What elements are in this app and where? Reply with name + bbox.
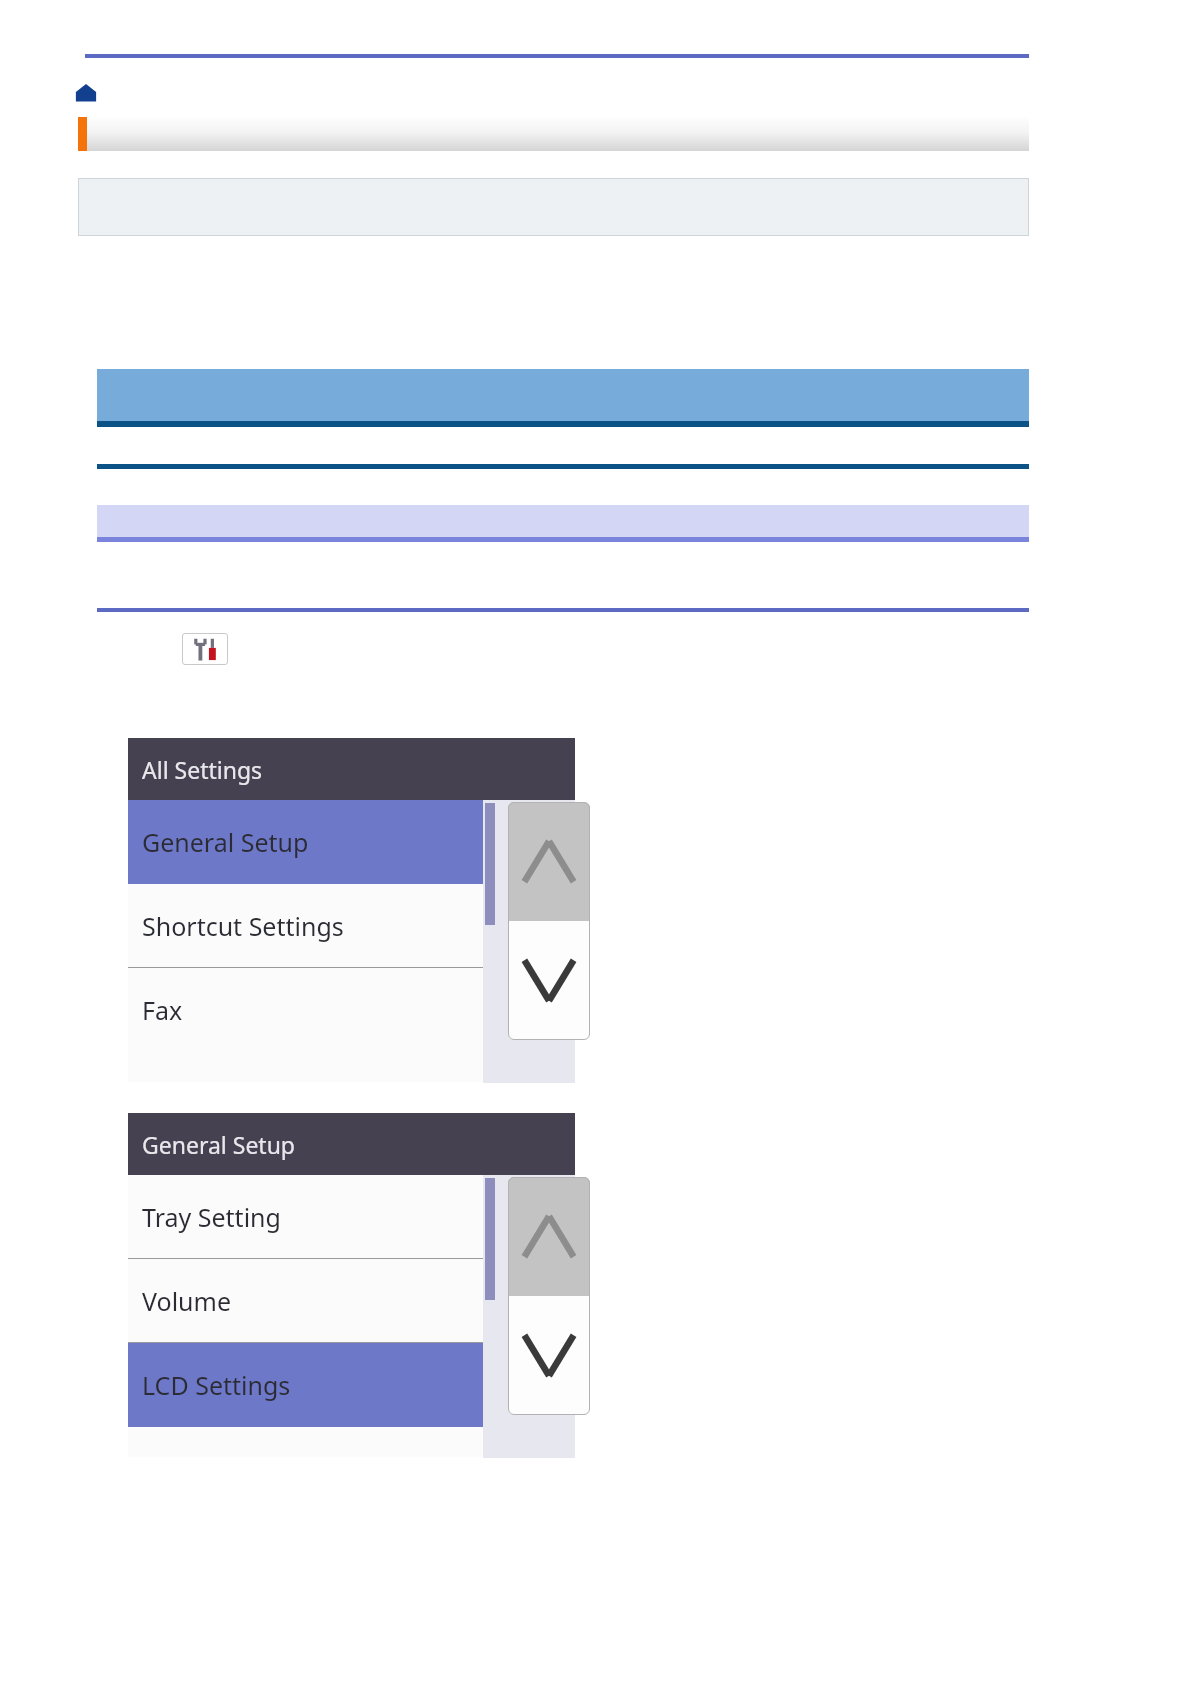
- staticText: Volume: [142, 1284, 232, 1318]
- staticText: Fax: [142, 993, 183, 1027]
- button[interactable]: Scroll down: [508, 1296, 590, 1415]
- button[interactable]: LCD Settings: [128, 1343, 483, 1427]
- button[interactable]: Settings: [182, 633, 228, 665]
- staticText: Tray Setting: [142, 1200, 281, 1234]
- staticText: LCD Settings: [142, 1368, 291, 1402]
- staticText: All Settings: [142, 754, 263, 785]
- button[interactable]: Volume: [128, 1259, 483, 1343]
- button[interactable]: Shortcut Settings: [128, 884, 483, 968]
- button[interactable]: Fax: [128, 968, 483, 1052]
- button[interactable]: Home: [75, 82, 97, 102]
- button[interactable]: Scroll up: [508, 1177, 590, 1296]
- button[interactable]: Scroll down: [508, 921, 590, 1040]
- button[interactable]: Tray Setting: [128, 1175, 483, 1259]
- staticText: General Setup: [142, 1129, 296, 1160]
- staticText: General Setup: [142, 825, 309, 859]
- button[interactable]: Scroll up: [508, 802, 590, 921]
- button[interactable]: General Setup: [128, 800, 483, 884]
- staticText: Shortcut Settings: [142, 909, 344, 943]
